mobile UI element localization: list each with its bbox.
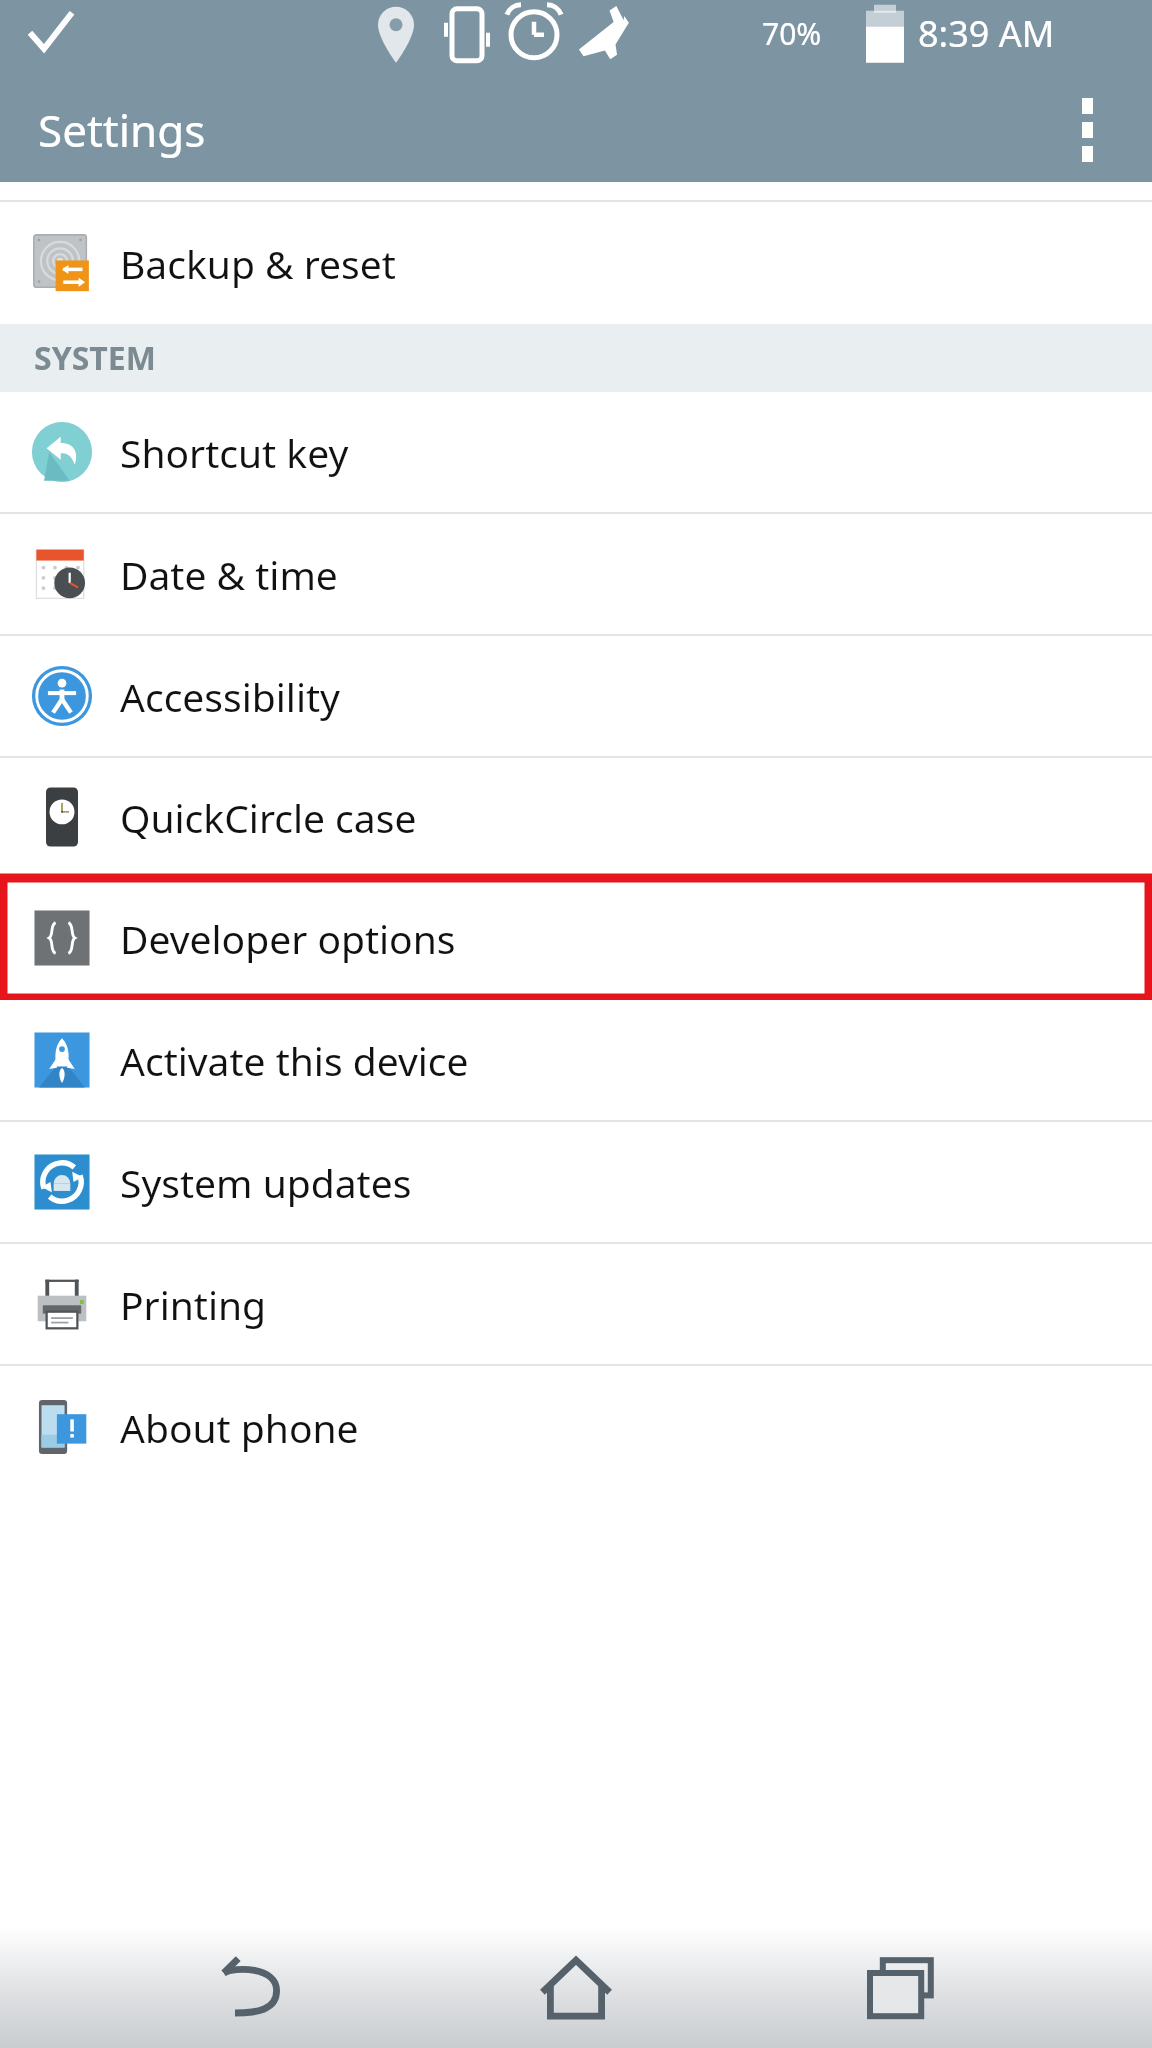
staticText: Settings <box>38 100 206 160</box>
button[interactable]: More options <box>1042 85 1132 175</box>
button[interactable]: Home <box>501 1930 651 2048</box>
staticText: Developer options <box>120 912 456 965</box>
button[interactable]: Backup & reset <box>0 202 1152 324</box>
button[interactable]: About phone <box>0 1366 1152 1488</box>
button[interactable]: Developer options <box>0 876 1152 1000</box>
staticText: Activate this device <box>120 1034 469 1087</box>
staticText: QuickCircle case <box>120 791 417 844</box>
staticText: Backup & reset <box>120 237 396 290</box>
button[interactable]: Shortcut key <box>0 392 1152 512</box>
button[interactable]: Recent apps <box>827 1930 977 2048</box>
button[interactable]: Activate this device <box>0 1000 1152 1120</box>
staticText: SYSTEM <box>34 336 156 380</box>
button[interactable]: Back <box>176 1930 326 2048</box>
staticText: 70% <box>762 13 822 54</box>
button[interactable]: Date & time <box>0 514 1152 634</box>
button[interactable]: Printing <box>0 1244 1152 1364</box>
button[interactable]: System updates <box>0 1122 1152 1242</box>
button[interactable]: Accessibility <box>0 636 1152 756</box>
button[interactable]: QuickCircle case <box>0 758 1152 876</box>
staticText: Accessibility <box>120 670 340 723</box>
staticText: 8:39 AM <box>918 9 1055 58</box>
staticText: Printing <box>120 1278 267 1331</box>
staticText: System updates <box>120 1156 412 1209</box>
staticText: Shortcut key <box>120 426 349 479</box>
staticText: Date & time <box>120 548 338 601</box>
staticText: About phone <box>120 1401 359 1454</box>
